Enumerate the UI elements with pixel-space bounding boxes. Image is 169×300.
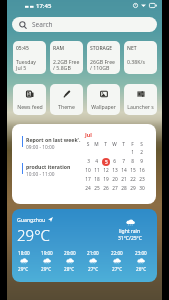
staticText: 1 [131,149,134,156]
staticText: STORAGE [90,45,113,52]
staticText: 5 [105,159,108,166]
staticText: 21 [121,176,127,183]
staticText: 18 [94,176,100,183]
staticText: light rain [119,228,141,235]
staticText: 10 [85,167,91,174]
staticText: NET [127,45,137,52]
staticText: 28°C [64,266,75,272]
staticText: / 5.8GB [53,64,71,71]
staticText: Jul 5 [16,64,27,71]
staticText: 0.38K/s [127,58,145,65]
staticText: 20 [112,176,118,183]
staticText: Theme [58,103,75,110]
staticText: 25 [94,185,100,192]
staticText: Wallpaper [91,103,116,110]
staticText: 09:00 - 10:00 [26,144,55,151]
staticText: 24 [85,185,91,192]
staticText: Jul [85,131,92,138]
staticText: Guangzhou [17,216,46,223]
button[interactable]: NET [124,41,157,74]
staticText: RAM [53,45,65,52]
button[interactable]: Guangzhou [12,209,157,282]
staticText: 27 [112,185,118,192]
staticText: 20:00 [64,250,76,256]
staticText: 9 [140,158,143,165]
staticText: News feed [17,103,43,110]
staticText: 2.2GB Free [53,58,80,65]
staticText: 12 [103,167,109,174]
staticText: 4 [95,158,98,165]
staticText: F [128,141,137,148]
button[interactable]: Theme [50,84,83,115]
button[interactable]: Search [12,17,157,32]
staticText: 21:00 [87,250,99,256]
staticText: 29°C [18,266,29,272]
staticText: 30 [139,185,145,192]
staticText: T [119,141,128,148]
staticText: Report on last week'. [26,136,81,143]
staticText: / 110GB [90,64,110,71]
staticText: 22 [130,176,136,183]
staticText: 15 [130,167,136,174]
button[interactable]: Wallpaper [87,84,120,115]
staticText: 18:00 [18,250,30,256]
staticText: Launcher s [127,103,154,110]
staticText: W [110,141,119,148]
staticText: 6 [113,158,116,165]
staticText: product iteration [26,163,71,170]
staticText: 11 [94,167,100,174]
staticText: 27°C [112,266,123,272]
staticText: 2 [140,149,143,156]
button[interactable]: RAM [50,41,83,74]
button[interactable]: 05:45 [13,41,46,74]
staticText: Search [32,20,53,29]
staticText: 26 [103,185,109,192]
staticText: 29°C [41,266,52,272]
staticText: 27°C [88,266,99,272]
staticText: 23:00 [135,250,147,256]
staticText: 14 [121,167,127,174]
staticText: S [84,141,92,148]
staticText: 7 [122,158,125,165]
staticText: 26GB Free [90,58,116,65]
staticText: 19:00 [41,250,53,256]
staticText: 19 [103,176,109,183]
staticText: 17:45 [36,2,52,10]
staticText: 3 [87,158,90,165]
staticText: 17 [85,176,91,183]
button[interactable]: STORAGE [87,41,120,74]
staticText: Tuesday [16,58,36,65]
button[interactable]: News feed [13,84,46,115]
staticText: T [101,141,110,148]
staticText: 23 [139,176,145,183]
staticText: 8 [131,158,134,165]
staticText: 29°C [17,225,50,245]
staticText: M [92,141,101,148]
staticText: 16 [139,167,145,174]
staticText: 31°C/25°C [118,235,142,242]
staticText: 10:00 - 11:00 [26,171,55,178]
staticText: 28 [121,185,127,192]
staticText: 29 [130,185,136,192]
staticText: 26°C [136,266,147,272]
button[interactable]: Launcher s [124,84,157,115]
button[interactable]: Report on last week'. [12,124,156,204]
staticText: S [137,141,146,148]
staticText: 13 [112,167,118,174]
staticText: 05:45 [16,45,29,52]
staticText: 22:00 [111,250,123,256]
